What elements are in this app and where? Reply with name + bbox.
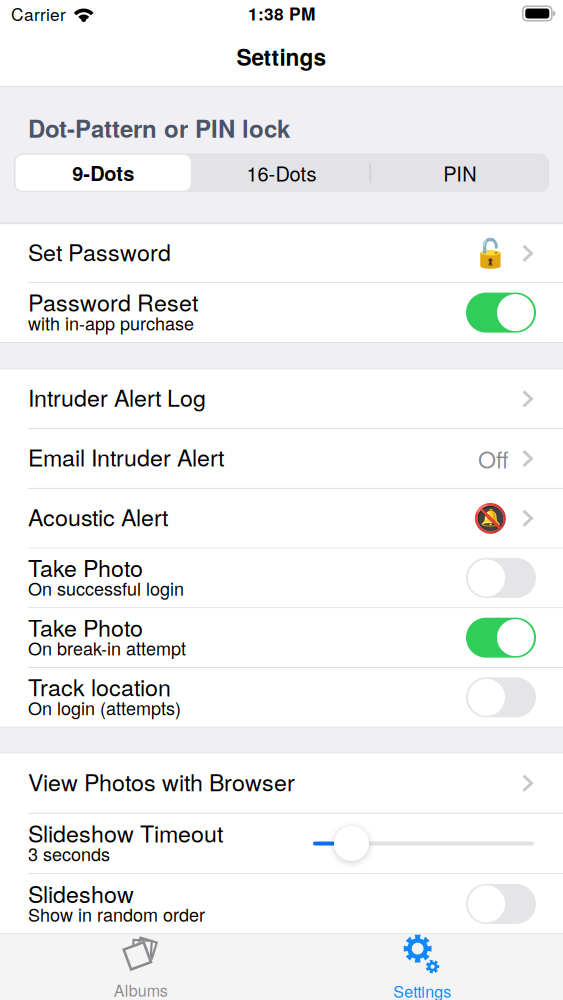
button[interactable]: 9-Dots bbox=[14, 153, 192, 192]
staticText: Off bbox=[478, 442, 508, 475]
staticText: Carrier bbox=[11, 1, 66, 26]
staticText: Set Password bbox=[28, 235, 171, 268]
button[interactable]: Acoustic Alert bbox=[0, 489, 563, 548]
staticText: Show in random order bbox=[28, 901, 205, 927]
staticText: Intruder Alert Log bbox=[28, 380, 206, 413]
staticText: Settings bbox=[236, 41, 326, 72]
button[interactable]: Slideshow Timeout bbox=[0, 814, 563, 873]
button[interactable]: PIN bbox=[371, 153, 549, 192]
button[interactable]: Track location bbox=[0, 668, 563, 727]
staticText: Take Photo bbox=[28, 610, 143, 643]
staticText: with in-app purchase bbox=[28, 310, 194, 335]
staticText: 🔓 bbox=[473, 237, 508, 269]
staticText: On break-in attempt bbox=[28, 635, 186, 661]
staticText: 16-Dots bbox=[246, 159, 316, 187]
button[interactable]: Take Photo bbox=[0, 549, 563, 607]
staticText: PIN bbox=[443, 159, 476, 187]
staticText: 9-Dots bbox=[72, 159, 134, 187]
button[interactable]: Password Reset bbox=[0, 283, 563, 342]
staticText: Password Reset bbox=[28, 285, 198, 318]
staticText: Albums bbox=[114, 979, 168, 1000]
button[interactable]: Intruder Alert Log bbox=[0, 369, 563, 428]
staticText: Slideshow bbox=[28, 876, 134, 909]
staticText: Take Photo bbox=[28, 550, 143, 583]
button[interactable]: Settings bbox=[281, 934, 563, 1000]
staticText: Dot-Pattern or PIN lock bbox=[28, 111, 290, 145]
staticText: Settings bbox=[393, 980, 451, 1000]
staticText: View Photos with Browser bbox=[28, 765, 295, 798]
staticText: Track location bbox=[28, 670, 171, 703]
button[interactable]: Albums bbox=[0, 934, 281, 1000]
staticText: 3 seconds bbox=[28, 841, 110, 866]
staticText: Email Intruder Alert bbox=[28, 440, 224, 473]
button[interactable]: Take Photo bbox=[0, 608, 563, 667]
button[interactable]: Email Intruder Alert bbox=[0, 429, 563, 488]
staticText: On login (attempts) bbox=[28, 694, 181, 720]
staticText: 🔕 bbox=[473, 502, 508, 534]
staticText: Acoustic Alert bbox=[28, 500, 168, 533]
button[interactable]: Set Password bbox=[0, 224, 563, 282]
button[interactable]: 16-Dots bbox=[192, 153, 371, 192]
staticText: Slideshow Timeout bbox=[28, 816, 223, 849]
staticText: On successful login bbox=[28, 575, 184, 601]
staticText: 1:38 PM bbox=[248, 1, 315, 26]
button[interactable]: Slideshow bbox=[0, 874, 563, 934]
button[interactable]: View Photos with Browser bbox=[0, 753, 563, 813]
